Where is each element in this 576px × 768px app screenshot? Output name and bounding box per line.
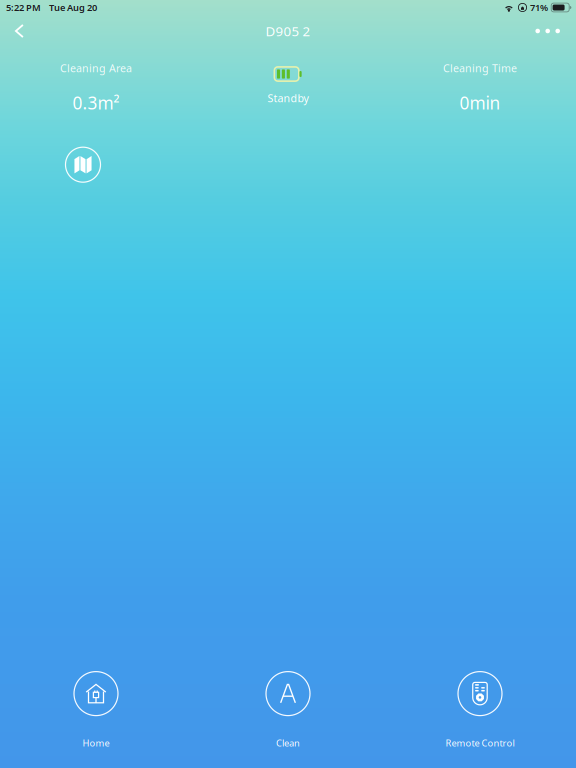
staticText: 0min — [459, 91, 500, 114]
button[interactable]: Back — [0, 16, 43, 46]
staticText: 71% — [530, 1, 548, 14]
button[interactable]: Clean — [192, 672, 384, 749]
button[interactable]: Map — [57, 139, 108, 190]
staticText: Cleaning Time — [443, 61, 517, 75]
staticText: Clean — [276, 737, 300, 749]
staticText: 5:22 PM — [6, 1, 41, 14]
staticText: Remote Control — [445, 737, 514, 749]
button[interactable]: More options — [515, 16, 576, 46]
staticText: 0.3m² — [72, 91, 119, 114]
staticText: Tue Aug 20 — [49, 1, 97, 14]
staticText: D905 2 — [265, 22, 310, 40]
staticText: Home — [82, 737, 109, 749]
staticText: Cleaning Area — [60, 61, 132, 75]
button[interactable]: Remote Control — [384, 672, 576, 749]
button[interactable]: Home — [0, 672, 192, 749]
staticText: Standby — [267, 91, 308, 105]
